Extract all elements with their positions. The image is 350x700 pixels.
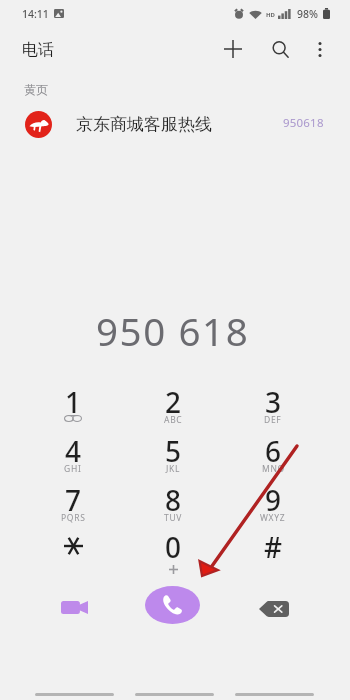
staticText: JKL [166, 463, 181, 475]
button[interactable]: 5 [123, 431, 223, 480]
staticText: 950 618 [96, 305, 250, 357]
button[interactable]: 1 [23, 382, 123, 431]
staticText: 14:11 [22, 7, 49, 21]
button[interactable]: 京东商城客服热线 [0, 103, 350, 145]
staticText: MNO [262, 463, 285, 475]
button[interactable]: Back [224, 676, 324, 700]
button[interactable]: # [223, 527, 323, 576]
staticText: 6 [265, 432, 282, 470]
button[interactable] [23, 527, 123, 576]
staticText: 1 [65, 383, 82, 421]
staticText: 5 [165, 432, 182, 470]
staticText: TUV [164, 512, 183, 524]
staticText: WXYZ [260, 512, 286, 524]
staticText: 950618 [283, 115, 324, 131]
staticText: 9 [265, 481, 282, 519]
staticText: DEF [264, 414, 282, 426]
button[interactable]: 6 [223, 431, 323, 480]
button[interactable]: Call [145, 586, 200, 624]
button[interactable]: 2 [123, 382, 223, 431]
staticText: 98% [297, 7, 318, 21]
button[interactable]: 4 [23, 431, 123, 480]
staticText: 3 [265, 383, 282, 421]
staticText: HD [266, 11, 275, 19]
staticText: GHI [64, 463, 82, 475]
button[interactable]: 9 [223, 480, 323, 527]
button[interactable]: Search [262, 31, 298, 67]
button[interactable]: Home [124, 676, 224, 700]
button[interactable]: 3 [223, 382, 323, 431]
staticText: 黄页 [24, 82, 48, 97]
button[interactable]: More options [302, 31, 338, 67]
staticText: 京东商城客服热线 [76, 114, 212, 135]
button[interactable]: Video call [52, 585, 96, 629]
staticText: 0 [165, 528, 182, 566]
button[interactable]: Recents [24, 676, 124, 700]
staticText: PQRS [61, 512, 86, 524]
staticText: 电话 [22, 40, 54, 60]
staticText: 4 [65, 432, 82, 470]
button[interactable]: 7 [23, 480, 123, 527]
staticText: 2 [165, 383, 182, 421]
button[interactable]: Backspace [252, 587, 296, 631]
button[interactable]: 8 [123, 480, 223, 527]
button[interactable]: Add contact [215, 31, 251, 67]
staticText: 8 [165, 481, 182, 519]
staticText: ABC [164, 414, 183, 426]
staticText: 7 [65, 481, 82, 519]
staticText: # [264, 528, 283, 566]
button[interactable]: 0 [123, 527, 223, 576]
